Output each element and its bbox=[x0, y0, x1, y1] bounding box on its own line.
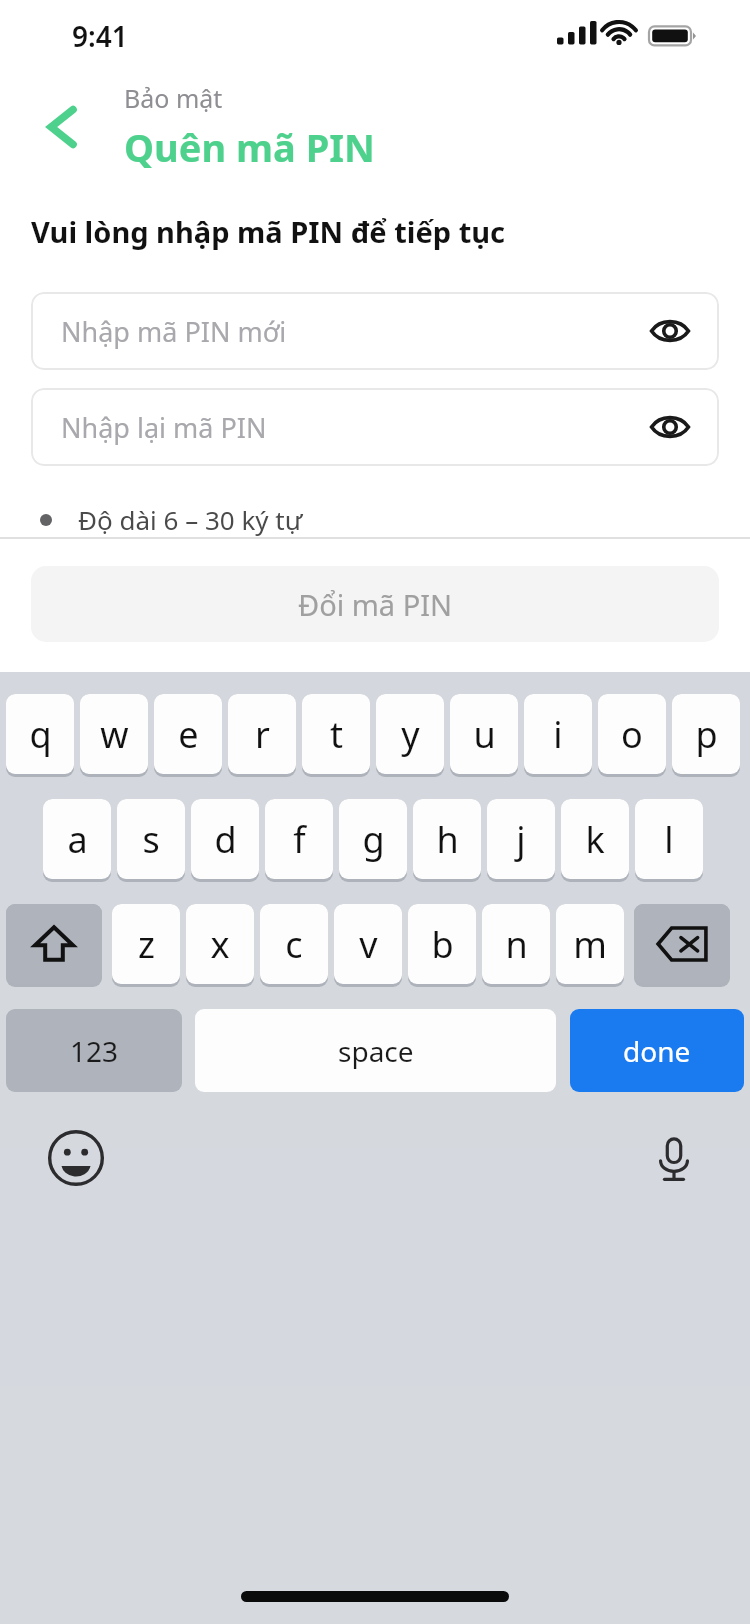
button[interactable]: z bbox=[112, 904, 180, 984]
button[interactable]: done bbox=[570, 1009, 744, 1092]
button[interactable]: x bbox=[186, 904, 254, 984]
button[interactable]: Show PIN bbox=[647, 404, 693, 450]
button[interactable]: i bbox=[524, 694, 592, 774]
button[interactable]: Show PIN bbox=[647, 308, 693, 354]
button[interactable]: Đổi mã PIN bbox=[31, 566, 719, 642]
button[interactable]: Dictation bbox=[646, 1130, 702, 1186]
staticText: w bbox=[100, 710, 129, 759]
staticText: r bbox=[255, 710, 270, 759]
staticText: space bbox=[338, 1032, 414, 1070]
staticText: v bbox=[359, 920, 378, 969]
staticText: 123 bbox=[70, 1032, 119, 1070]
button[interactable]: n bbox=[482, 904, 550, 984]
staticText: done bbox=[623, 1032, 691, 1070]
button[interactable]: e bbox=[154, 694, 222, 774]
staticText: a bbox=[67, 815, 88, 864]
staticText: z bbox=[138, 920, 155, 969]
staticText: t bbox=[330, 710, 343, 759]
button[interactable]: h bbox=[413, 799, 481, 879]
button[interactable]: j bbox=[487, 799, 555, 879]
staticText: p bbox=[695, 710, 718, 759]
staticText: Nhập lại mã PIN bbox=[61, 409, 647, 446]
button[interactable]: v bbox=[334, 904, 402, 984]
staticText: Vui lòng nhập mã PIN để tiếp tục bbox=[31, 212, 506, 251]
staticText: f bbox=[293, 815, 306, 864]
button[interactable]: p bbox=[672, 694, 740, 774]
button[interactable]: k bbox=[561, 799, 629, 879]
staticText: Nhập mã PIN mới bbox=[61, 313, 647, 350]
button[interactable]: Shift bbox=[6, 904, 102, 984]
button[interactable]: a bbox=[43, 799, 111, 879]
staticText: b bbox=[431, 920, 454, 969]
button[interactable]: b bbox=[408, 904, 476, 984]
button[interactable]: o bbox=[598, 694, 666, 774]
button[interactable]: Back bbox=[26, 89, 102, 165]
button[interactable]: r bbox=[228, 694, 296, 774]
staticText: s bbox=[142, 815, 160, 864]
staticText: Độ dài 6 – 30 ký tự bbox=[78, 502, 303, 537]
staticText: c bbox=[285, 920, 303, 969]
button[interactable]: f bbox=[265, 799, 333, 879]
staticText: i bbox=[553, 710, 563, 759]
staticText: y bbox=[401, 710, 420, 759]
staticText: e bbox=[178, 710, 199, 759]
button[interactable]: Backspace bbox=[634, 904, 730, 984]
staticText: q bbox=[29, 710, 52, 759]
button[interactable]: g bbox=[339, 799, 407, 879]
staticText: u bbox=[473, 710, 496, 759]
button[interactable]: c bbox=[260, 904, 328, 984]
button[interactable]: w bbox=[80, 694, 148, 774]
button[interactable]: u bbox=[450, 694, 518, 774]
staticText: Đổi mã PIN bbox=[298, 585, 453, 624]
staticText: 9:41 bbox=[72, 17, 128, 55]
button[interactable]: space bbox=[195, 1009, 556, 1092]
button[interactable]: Nhập mã PIN mới bbox=[31, 292, 719, 370]
staticText: l bbox=[664, 815, 674, 864]
staticText: k bbox=[585, 815, 605, 864]
button[interactable]: y bbox=[376, 694, 444, 774]
button[interactable]: t bbox=[302, 694, 370, 774]
staticText: o bbox=[621, 710, 643, 759]
button[interactable]: m bbox=[556, 904, 624, 984]
staticText: n bbox=[505, 920, 528, 969]
button[interactable]: d bbox=[191, 799, 259, 879]
staticText: d bbox=[214, 815, 237, 864]
staticText: g bbox=[362, 815, 385, 864]
button[interactable]: Nhập lại mã PIN bbox=[31, 388, 719, 466]
button[interactable]: 123 bbox=[6, 1009, 182, 1092]
staticText: j bbox=[516, 815, 526, 864]
staticText: x bbox=[210, 920, 230, 969]
staticText: m bbox=[573, 920, 607, 969]
staticText: Bảo mật bbox=[124, 81, 223, 115]
button[interactable]: l bbox=[635, 799, 703, 879]
button[interactable]: s bbox=[117, 799, 185, 879]
button[interactable]: q bbox=[6, 694, 74, 774]
staticText: Quên mã PIN bbox=[124, 121, 375, 173]
button[interactable]: Emoji bbox=[48, 1130, 104, 1186]
staticText: h bbox=[436, 815, 459, 864]
